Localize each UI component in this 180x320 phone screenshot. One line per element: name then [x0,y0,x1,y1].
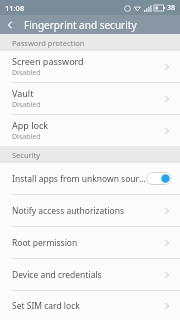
staticText: Device and credentials [12,269,162,281]
staticText: 11:08 [5,3,25,13]
staticText: Disabled [12,132,41,142]
button[interactable]: Install apps from unknown sources toggle [146,172,172,185]
button[interactable]: Back [0,15,19,34]
staticText: 38 [167,3,176,13]
staticText: Disabled [12,100,41,110]
staticText: Vault [12,87,34,99]
button[interactable]: App lock [0,115,180,146]
staticText: Notify access authorizations [12,205,162,217]
button[interactable]: Set SIM card lock [0,291,180,320]
staticText: Install apps from unknown sources [12,173,146,185]
staticText: Security [12,150,41,160]
button[interactable]: Notify access authorizations [0,195,180,226]
button[interactable]: Vault [0,83,180,114]
staticText: App lock [12,119,49,131]
staticText: Disabled [12,68,41,78]
staticText: Root permission [12,237,162,249]
staticText: Password protection [12,38,85,48]
button[interactable]: Install apps from unknown sources [0,163,180,194]
button[interactable]: Screen password [0,51,180,82]
staticText: Set SIM card lock [12,300,162,312]
staticText: Screen password [12,55,84,67]
staticText: Fingerprint and security [24,18,137,32]
button[interactable]: Root permission [0,227,180,258]
button[interactable]: Device and credentials [0,259,180,290]
